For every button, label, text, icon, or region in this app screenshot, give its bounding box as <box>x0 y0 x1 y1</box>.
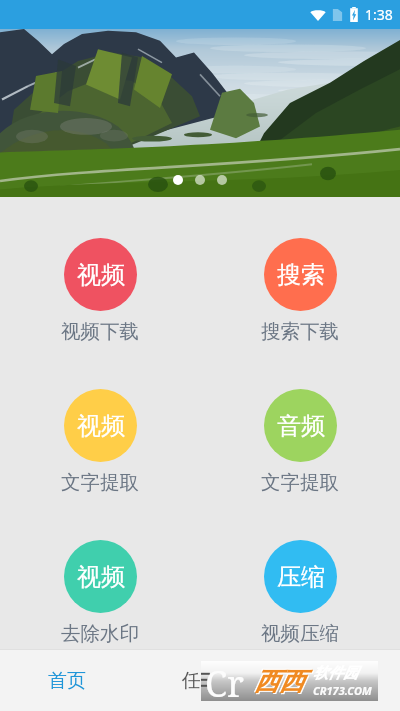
staticText: 1:38 <box>365 5 393 24</box>
button[interactable]: 首页 <box>0 650 134 711</box>
staticText: 我的 <box>315 669 353 693</box>
button[interactable]: 压缩 <box>200 499 400 649</box>
staticText: 软件园 <box>313 664 358 683</box>
staticText: 西西 <box>253 665 303 696</box>
staticText: 文字提取 <box>61 470 139 495</box>
staticText: 搜索下载 <box>261 319 339 344</box>
button[interactable]: 视频 <box>0 197 200 348</box>
staticText: 视频 <box>77 411 125 441</box>
staticText: 任务 <box>182 669 220 693</box>
staticText: 首页 <box>48 669 86 693</box>
staticText: Cr <box>205 659 245 699</box>
staticText: 西西 <box>254 666 304 697</box>
button[interactable]: 我的 <box>267 650 400 711</box>
staticText: 视频 <box>77 260 125 290</box>
button[interactable]: 任务 <box>134 650 267 711</box>
button[interactable]: 音频 <box>200 348 400 499</box>
staticText: 音频 <box>277 411 325 441</box>
staticText: 搜索 <box>277 260 325 290</box>
staticText: 视频下载 <box>61 319 139 344</box>
staticText: 视频 <box>77 562 125 592</box>
button[interactable]: 视频 <box>0 499 200 649</box>
staticText: 视频压缩 <box>261 621 339 646</box>
button[interactable]: 搜索 <box>200 197 400 348</box>
staticText: CR173.COM <box>313 683 372 698</box>
staticText: 去除水印 <box>61 621 139 646</box>
staticText: 西西 <box>255 667 305 698</box>
staticText: 压缩 <box>277 562 325 592</box>
button[interactable]: 视频 <box>0 348 200 499</box>
staticText: 文字提取 <box>261 470 339 495</box>
